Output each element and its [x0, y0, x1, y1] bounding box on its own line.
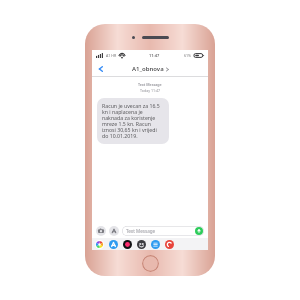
staticText: Text Message	[126, 228, 156, 234]
button[interactable]: Camera	[96, 226, 106, 236]
button[interactable]: Messages Apps	[151, 240, 160, 249]
staticText: A1_obnova	[132, 65, 164, 73]
button[interactable]: Racun je uvecan za 16.5 kn i naplacena j…	[97, 98, 169, 144]
button[interactable]: Send	[195, 227, 203, 235]
button[interactable]: App Store	[109, 226, 119, 236]
button[interactable]: Home	[142, 255, 159, 272]
staticText: 61%	[184, 53, 192, 58]
button[interactable]: Back	[95, 63, 106, 74]
staticText: Text Message	[138, 82, 162, 87]
button[interactable]: More	[165, 240, 174, 249]
button[interactable]: Fitness	[123, 240, 132, 249]
button[interactable]: App Store	[109, 240, 118, 249]
button[interactable]: Photos	[95, 240, 104, 249]
staticText: Racun je uvecan za 16.5 kn i naplacena j…	[102, 102, 164, 140]
button[interactable]: Digital Touch	[137, 240, 146, 249]
staticText: A1 HR	[106, 53, 117, 58]
staticText: 11:47	[149, 53, 160, 58]
staticText: Today 11:47	[140, 88, 161, 93]
button[interactable]: Text Message	[122, 226, 204, 236]
button[interactable]: A1_obnova	[132, 65, 169, 73]
